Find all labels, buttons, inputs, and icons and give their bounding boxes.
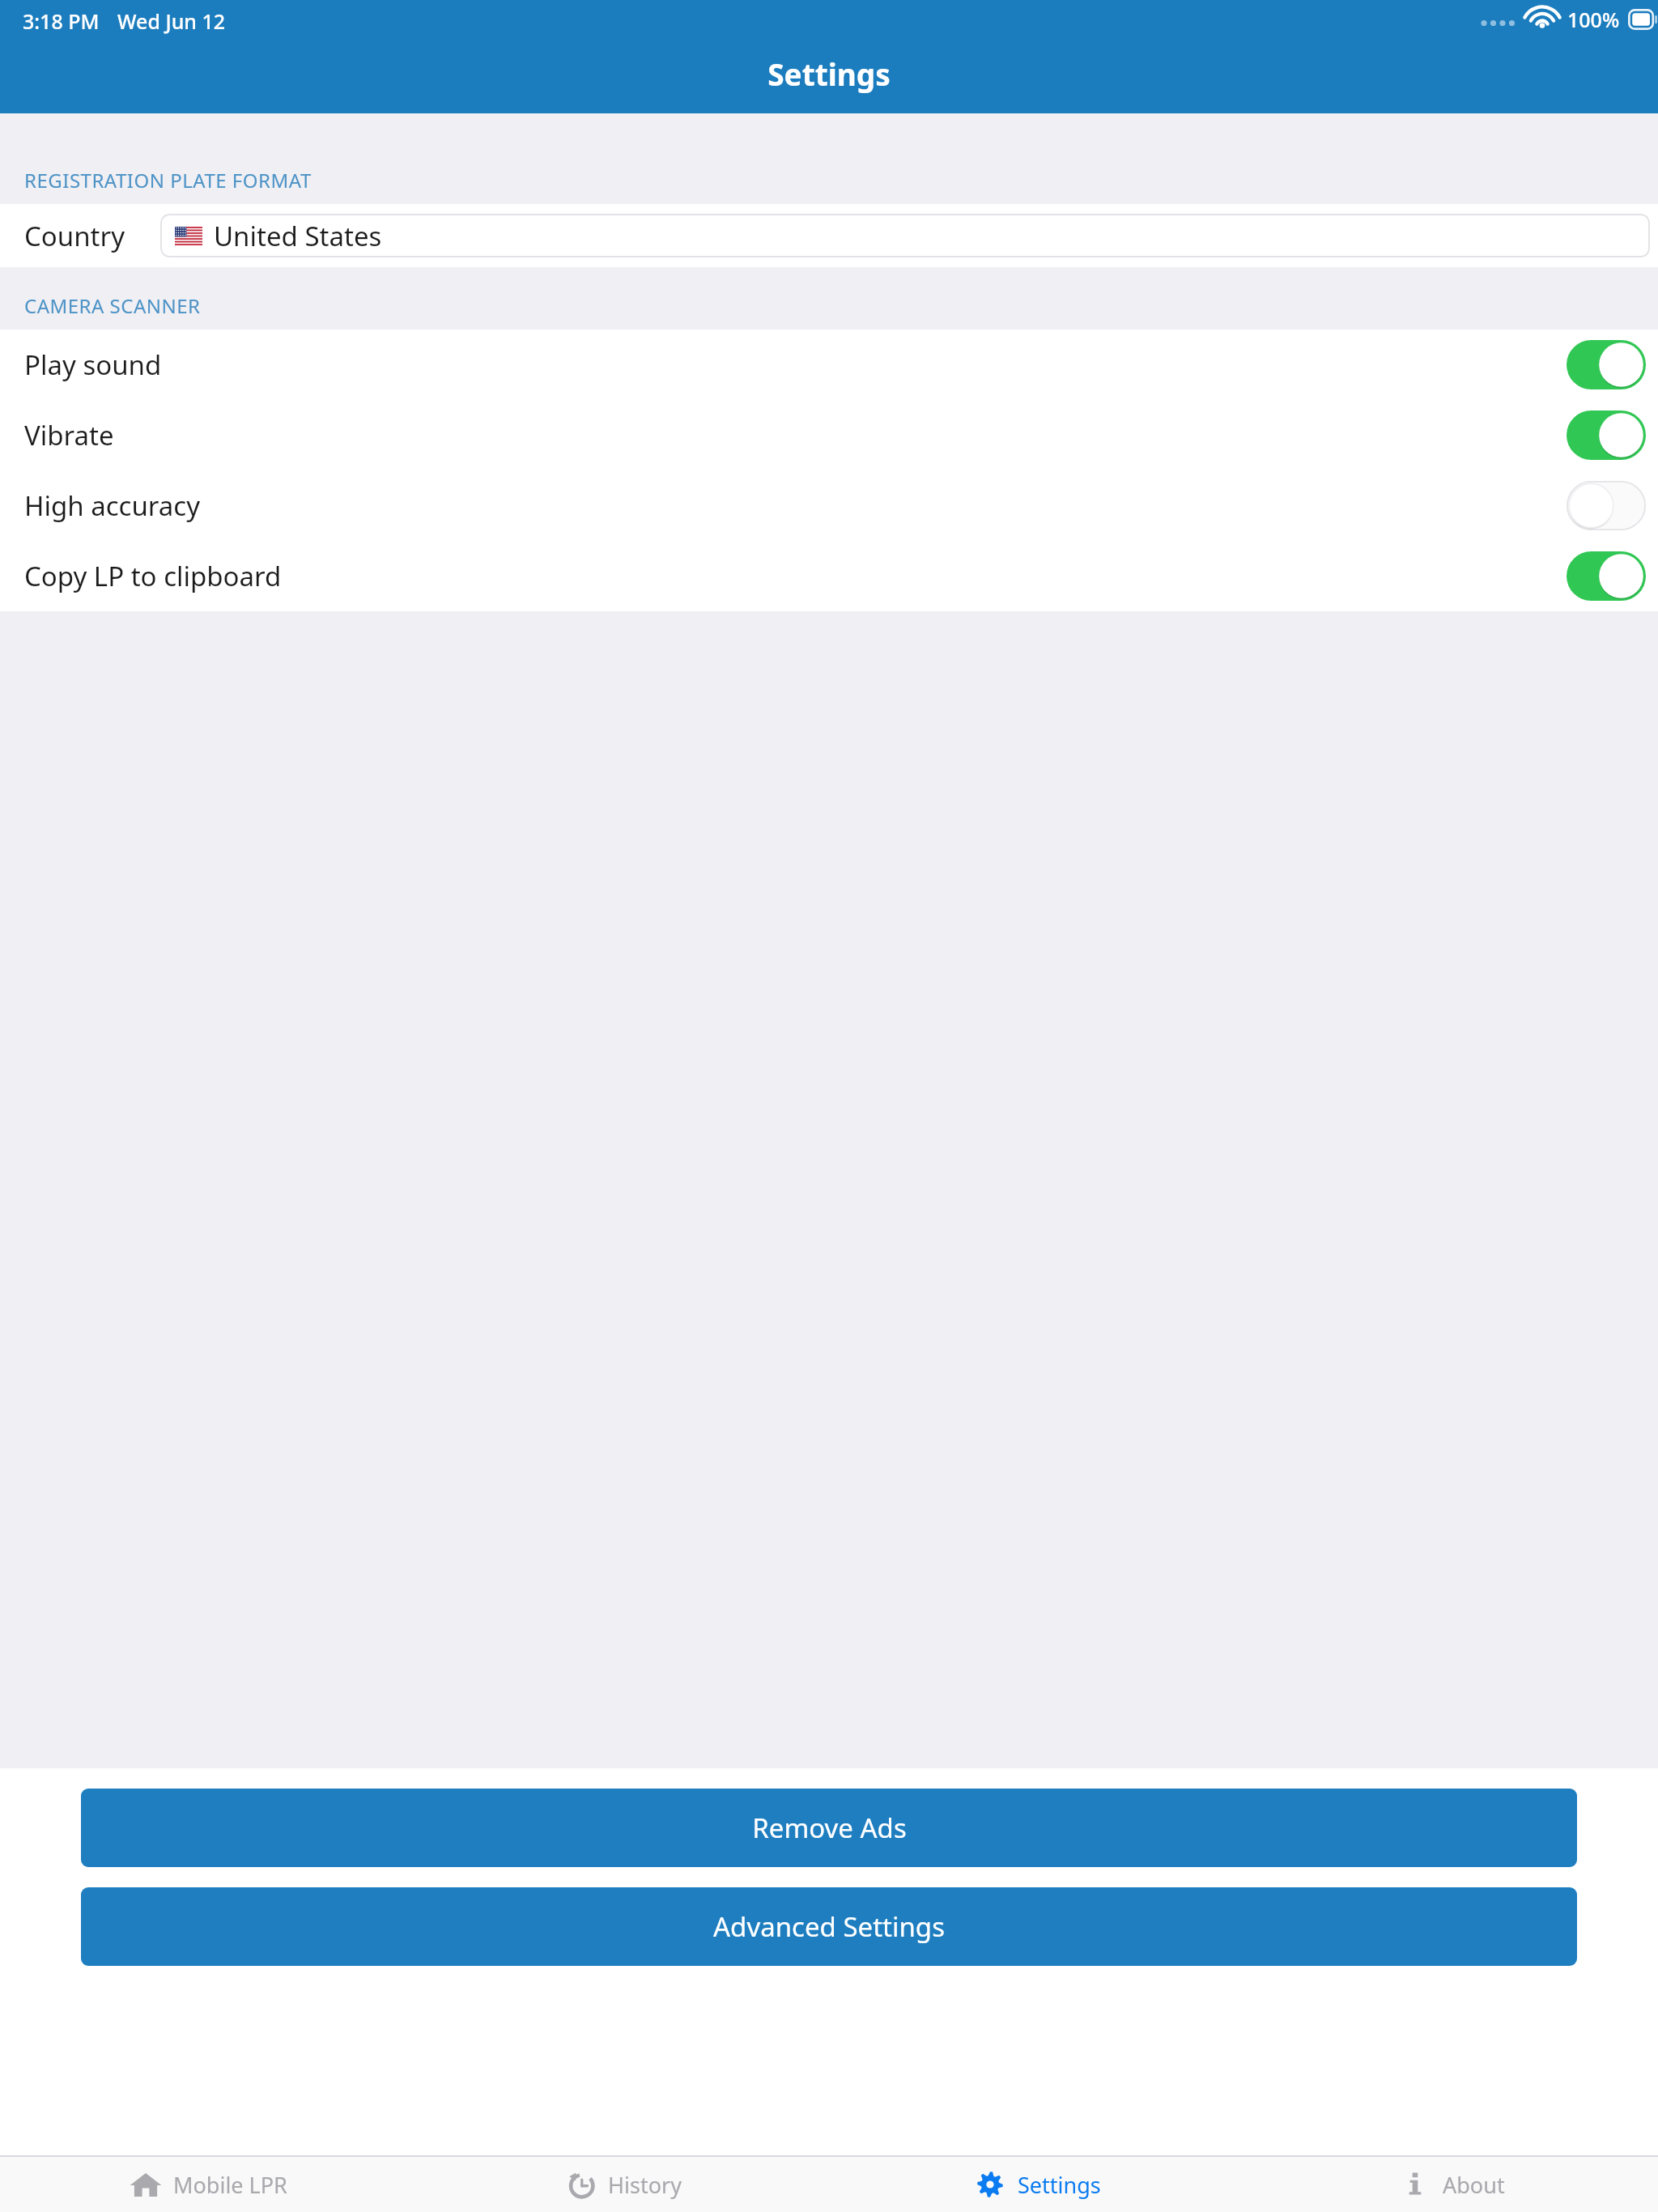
staticText: REGISTRATION PLATE FORMAT [24,167,312,194]
button[interactable]: History [414,2157,829,2212]
button[interactable]: About [1243,2157,1658,2212]
staticText: Wed Jun 12 [117,7,226,35]
staticText: Copy LP to clipboard [24,558,1567,594]
button[interactable]: Vibrate on [1567,410,1646,460]
button[interactable]: Play sound [0,330,1658,400]
button[interactable]: Play sound on [1567,340,1646,389]
button[interactable]: Advanced Settings [81,1887,1577,1966]
staticText: United States [214,218,382,254]
staticText: Country [24,218,125,254]
staticText: Play sound [24,347,1567,383]
button[interactable]: High accuracy off [1567,481,1646,530]
staticText: Vibrate [24,417,1567,453]
staticText: Settings [1018,2170,1101,2200]
button[interactable]: Copy LP to clipboard [0,541,1658,611]
button[interactable]: Copy LP to clipboard on [1567,551,1646,601]
staticText: High accuracy [24,487,1567,524]
staticText: Advanced Settings [713,1908,945,1945]
staticText: 100% [1567,6,1620,33]
staticText: Remove Ads [752,1810,907,1846]
staticText: Mobile LPR [173,2170,287,2200]
staticText: 3:18 PM [23,7,100,35]
staticText: History [608,2170,682,2200]
button[interactable]: Remove Ads [81,1789,1577,1867]
button[interactable]: Settings [829,2157,1243,2212]
button[interactable]: Vibrate [0,400,1658,470]
staticText: About [1443,2170,1505,2200]
button[interactable]: Mobile LPR [0,2157,414,2212]
staticText: Settings [767,53,891,94]
staticText: CAMERA SCANNER [24,292,201,319]
button[interactable]: High accuracy [0,470,1658,541]
button[interactable]: Country [0,204,1658,267]
